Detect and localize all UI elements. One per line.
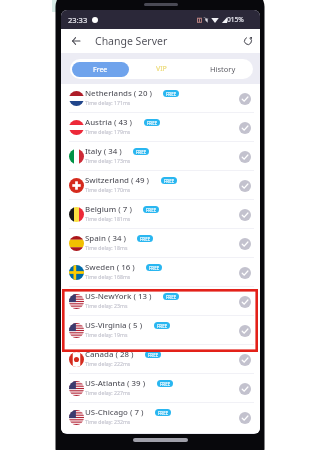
staticText: Belgium ( 7 ) [85,204,132,214]
staticText: Time delay: 222ms [85,360,131,367]
staticText: Italy ( 34 ) [85,146,122,156]
staticText: FREE [160,381,171,387]
staticText: Time delay: 170ms [85,186,131,193]
staticText: US-NewYork ( 13 ) [85,291,152,301]
button[interactable]: Italy ( 34 ) [61,142,260,171]
button[interactable]: Free [72,62,129,77]
button[interactable]: Switzerland ( 49 ) [61,171,260,200]
staticText: US-Chicago ( 7 ) [85,407,144,417]
button[interactable]: Austria ( 43 ) [61,113,260,142]
staticText: Time delay: 232ms [85,418,131,425]
staticText: Change Server [95,34,168,48]
button[interactable]: US-NewYork ( 13 ) [61,287,260,316]
button[interactable]: Canada ( 28 ) [61,345,260,374]
staticText: FREE [157,323,168,329]
button[interactable]: Sweden ( 16 ) [61,258,260,287]
button[interactable]: History [192,59,253,79]
staticText: Time delay: 23ms [85,302,128,309]
button[interactable]: US-Virginia ( 5 ) [61,316,260,345]
button[interactable]: Netherlands ( 20 ) [61,84,260,113]
button[interactable]: Back [68,33,84,49]
staticText: FREE [166,91,177,97]
staticText: FREE [146,207,157,213]
staticText: Time delay: 168ms [85,273,131,280]
staticText: FREE [164,178,175,184]
staticText: 23:33 [68,15,88,25]
staticText: Time delay: 181ms [85,215,131,222]
staticText: FREE [149,265,160,271]
staticText: US-Atlanta ( 39 ) [85,378,146,388]
staticText: Time delay: 227ms [85,389,131,396]
staticText: FREE [166,294,177,300]
staticText: Time delay: 171ms [85,99,131,106]
staticText: Spain ( 34 ) [85,233,126,243]
staticText: Netherlands ( 20 ) [85,88,152,98]
staticText: FREE [148,352,159,358]
staticText: History [210,64,236,74]
staticText: US-Virginia ( 5 ) [85,320,143,330]
button[interactable]: Spain ( 34 ) [61,229,260,258]
staticText: FREE [147,120,158,126]
button[interactable]: Refresh [241,34,255,48]
staticText: Canada ( 28 ) [85,349,134,359]
staticText: Austria ( 43 ) [85,117,133,127]
staticText: VIP [156,64,167,74]
staticText: FREE [140,236,151,242]
staticText: FREE [136,149,147,155]
staticText: Switzerland ( 49 ) [85,175,150,185]
staticText: FREE [158,410,169,416]
button[interactable]: Belgium ( 7 ) [61,200,260,229]
button[interactable]: VIP [131,59,192,79]
staticText: Time delay: 18ms [85,244,128,251]
staticText: Time delay: 179ms [85,128,131,135]
staticText: Sweden ( 16 ) [85,262,135,272]
staticText: Free [93,65,108,75]
staticText: Time delay: 19ms [85,331,128,338]
button[interactable]: US-Chicago ( 7 ) [61,403,260,432]
staticText: Time delay: 173ms [85,157,131,164]
button[interactable]: US-Atlanta ( 39 ) [61,374,260,403]
staticText: 015% [227,15,244,24]
